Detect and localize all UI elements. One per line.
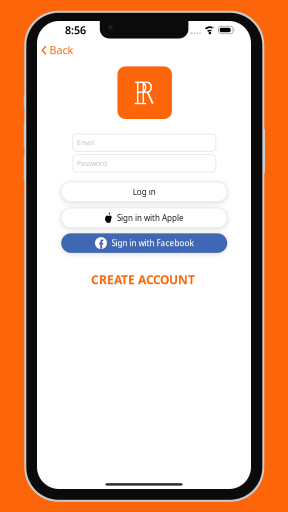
button[interactable]: Sign in with Apple bbox=[61, 208, 227, 228]
staticText: Back bbox=[49, 43, 73, 57]
button[interactable]: Password bbox=[73, 155, 216, 172]
button[interactable]: Log in bbox=[61, 182, 227, 202]
button[interactable]: Email bbox=[73, 134, 216, 151]
staticText: 8:56 bbox=[65, 23, 86, 37]
staticText: Email bbox=[77, 138, 95, 147]
button[interactable]: Back bbox=[37, 39, 82, 61]
staticText: Sign in with Facebook bbox=[111, 238, 193, 248]
staticText: Log in bbox=[133, 186, 156, 197]
staticText: Password bbox=[77, 159, 107, 168]
staticText: Sign in with Apple bbox=[117, 212, 184, 223]
staticText: CREATE ACCOUNT bbox=[91, 272, 195, 287]
button[interactable]: Sign in with Facebook bbox=[61, 233, 227, 253]
button[interactable]: CREATE ACCOUNT bbox=[81, 267, 205, 292]
